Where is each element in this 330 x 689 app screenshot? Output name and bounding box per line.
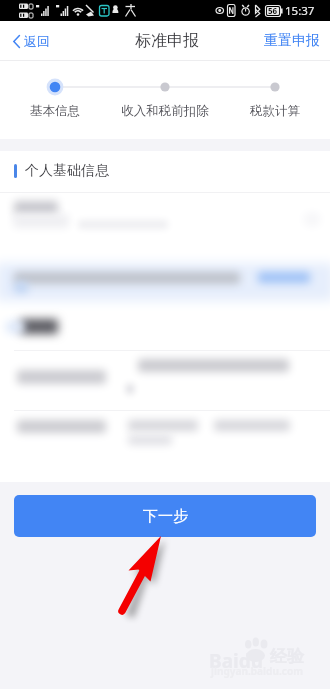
staticText: 返回 <box>24 33 50 49</box>
button[interactable]: 收入和税前扣除 <box>110 103 220 119</box>
button[interactable] <box>0 262 330 304</box>
staticText: 收入和税前扣除 <box>121 103 209 119</box>
button[interactable] <box>0 412 330 468</box>
button[interactable]: 下一步 <box>14 495 316 537</box>
button[interactable]: 基本信息 <box>0 103 110 119</box>
button[interactable]: 重置申报 <box>252 24 330 58</box>
staticText: 重置申报 <box>264 32 320 50</box>
staticText: 基本信息 <box>30 103 80 119</box>
button[interactable] <box>0 310 330 350</box>
button[interactable]: 返回 <box>0 25 62 57</box>
staticText: Baidu <box>209 648 264 674</box>
button[interactable] <box>0 352 330 408</box>
staticText: 56 <box>268 5 278 16</box>
button[interactable] <box>0 193 330 255</box>
staticText: 个人基础信息 <box>25 162 109 180</box>
staticText: 税款计算 <box>250 103 300 119</box>
button[interactable]: 税款计算 <box>220 103 330 119</box>
staticText: 下一步 <box>143 507 188 526</box>
staticText: 15:37 <box>285 3 315 19</box>
staticText: jingyan.baidu.com <box>211 664 303 678</box>
staticText: 标准申报 <box>135 31 199 51</box>
staticText: 经验 <box>270 646 304 667</box>
